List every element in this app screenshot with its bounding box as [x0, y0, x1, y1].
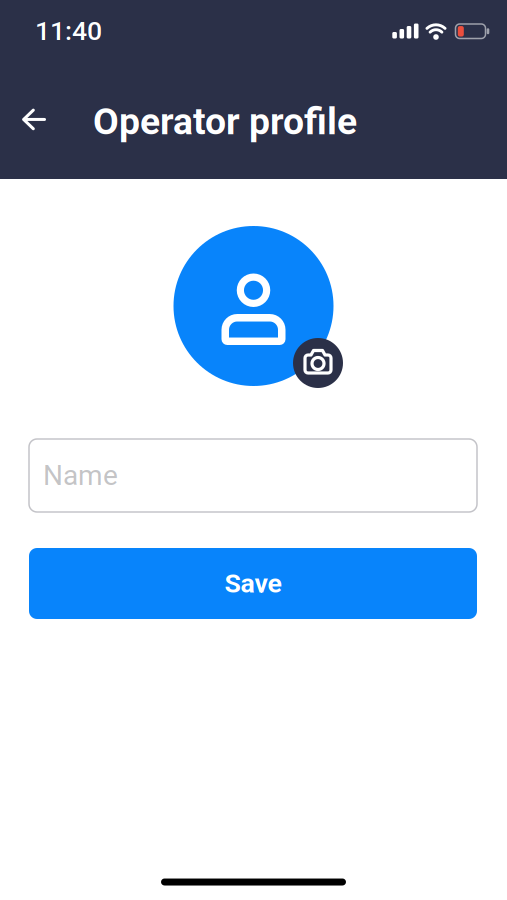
button[interactable]: Back — [0, 112, 55, 131]
button[interactable]: Save — [29, 548, 477, 619]
button[interactable]: Name — [29, 439, 477, 512]
staticText: Name — [43, 459, 118, 492]
staticText: Operator profile — [93, 100, 357, 143]
staticText: 11:40 — [35, 15, 102, 47]
staticText: Save — [224, 568, 281, 599]
button[interactable]: Change photo — [293, 338, 343, 388]
